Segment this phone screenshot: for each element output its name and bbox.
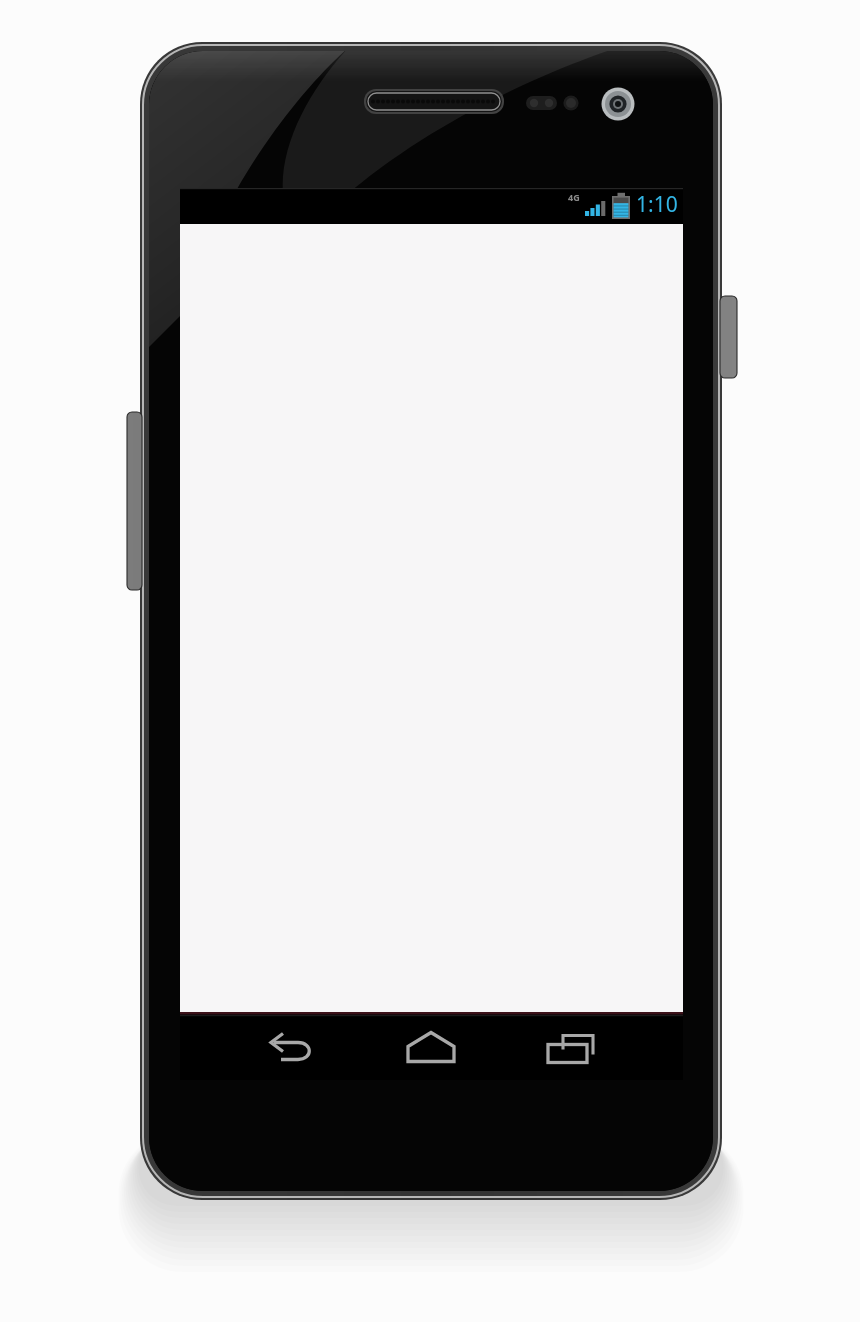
button[interactable]: Volume xyxy=(124,408,148,596)
button[interactable]: Back xyxy=(180,1015,347,1080)
button[interactable]: Home xyxy=(347,1015,515,1080)
button[interactable]: Power xyxy=(716,292,742,384)
button[interactable]: Recent apps xyxy=(515,1015,683,1080)
